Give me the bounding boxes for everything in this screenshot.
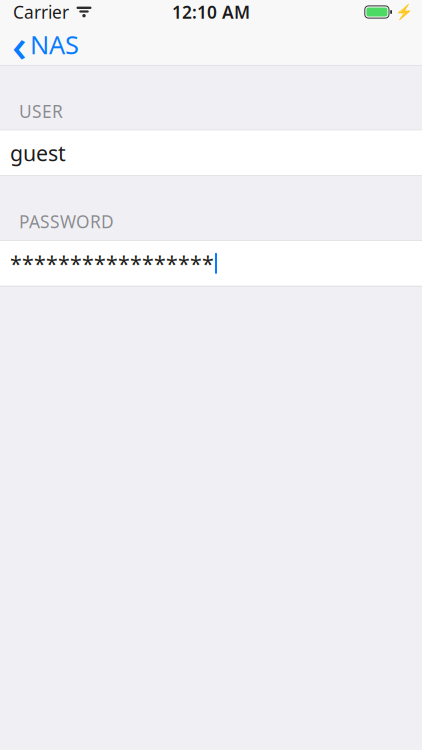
staticText: NAS bbox=[30, 28, 79, 61]
staticText: USER bbox=[19, 100, 63, 123]
staticText: ***************** bbox=[10, 249, 214, 277]
staticText: 12:10 AM bbox=[172, 0, 250, 23]
staticText: Carrier bbox=[13, 0, 69, 23]
button[interactable]: ***************** bbox=[0, 241, 422, 286]
button[interactable]: ‹ bbox=[0, 24, 93, 65]
staticText: PASSWORD bbox=[19, 210, 114, 233]
staticText: ⚡ bbox=[395, 4, 413, 20]
staticText: ‹ bbox=[12, 14, 27, 75]
button[interactable]: guest bbox=[0, 130, 422, 175]
staticText: guest bbox=[10, 139, 66, 167]
